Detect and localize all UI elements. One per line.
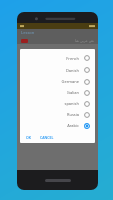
button[interactable]: Russia: [20, 109, 95, 120]
staticText: French: [66, 56, 79, 61]
button[interactable]: Arabic: [20, 120, 95, 131]
staticText: CANCEL: [40, 135, 54, 140]
staticText: نص عربي هنا: [75, 38, 94, 43]
button[interactable]: Danish: [20, 64, 95, 76]
staticText: Danish: [65, 68, 79, 73]
staticText: Lesson: [21, 30, 35, 35]
button[interactable]: Language flag: [21, 39, 28, 43]
button[interactable]: CANCEL: [38, 134, 56, 141]
staticText: Germane: [61, 79, 79, 84]
button[interactable]: Home: [45, 179, 71, 182]
button[interactable]: Germane: [20, 76, 95, 87]
staticText: spanish: [64, 101, 79, 106]
button[interactable]: OK: [24, 134, 33, 141]
button[interactable]: Italian: [20, 87, 95, 98]
staticText: Italian: [67, 90, 79, 95]
staticText: Russia: [66, 112, 79, 117]
button[interactable]: spanish: [20, 98, 95, 109]
staticText: Arabic: [67, 123, 79, 128]
staticText: OK: [26, 135, 31, 140]
button[interactable]: French: [20, 52, 95, 64]
